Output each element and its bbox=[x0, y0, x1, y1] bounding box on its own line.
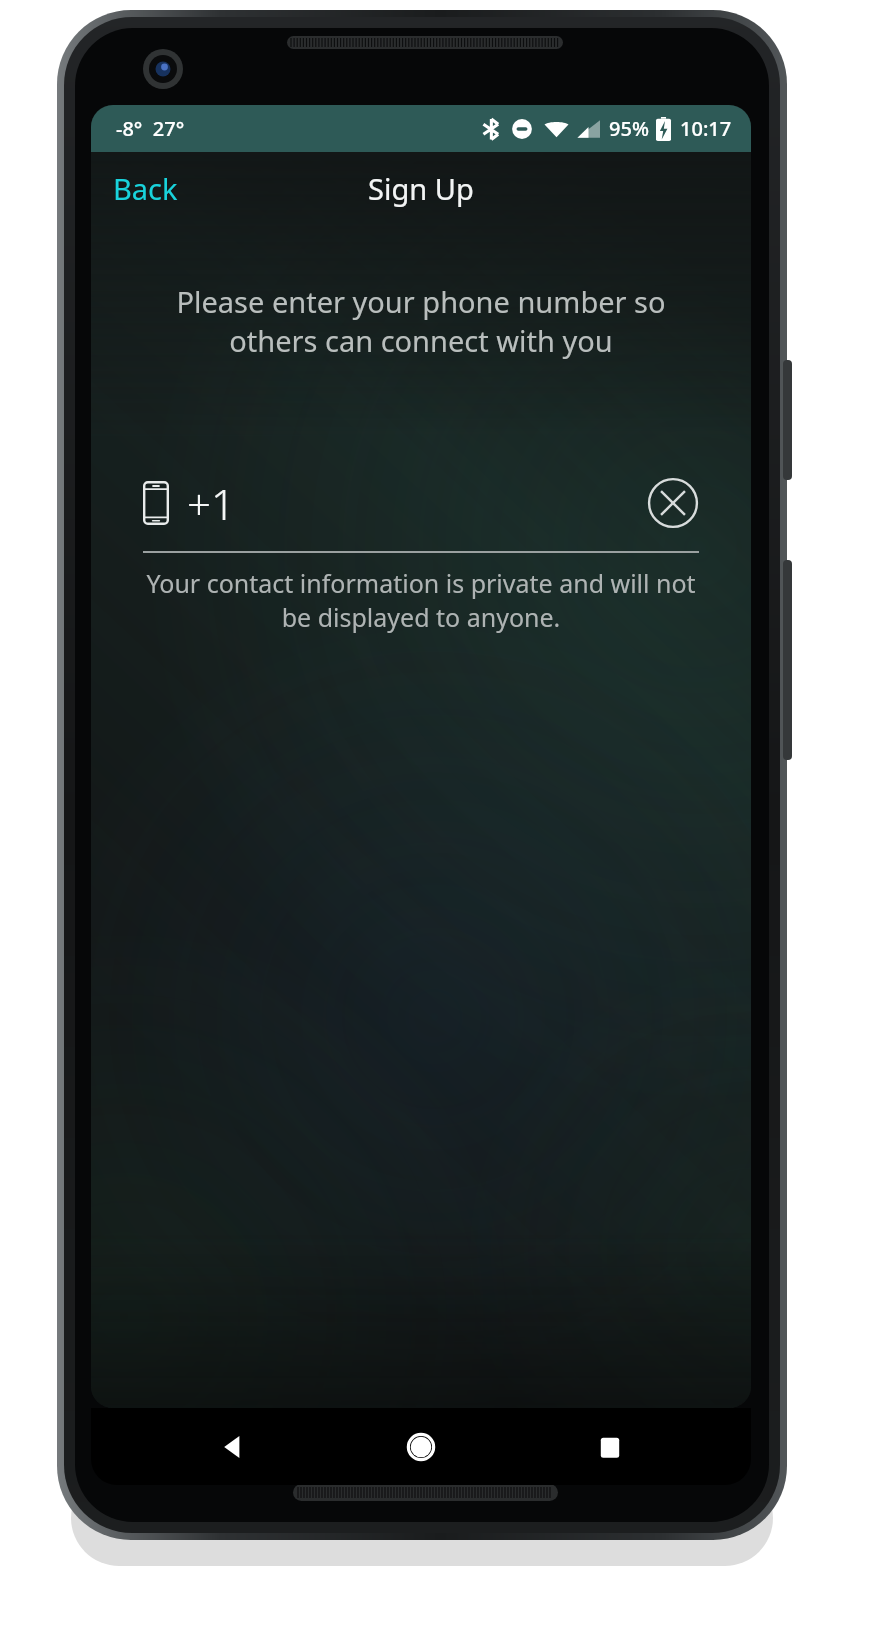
button[interactable]: Back bbox=[209, 1424, 255, 1470]
staticText: +1 bbox=[187, 475, 235, 532]
button[interactable]: Recents bbox=[587, 1424, 633, 1470]
staticText: Please enter your phone number so others… bbox=[131, 282, 711, 360]
staticText: Your contact information is private and … bbox=[135, 566, 707, 634]
staticText: 10:17 bbox=[680, 115, 732, 142]
staticText: Sign Up bbox=[368, 169, 474, 208]
other: Phone bbox=[143, 481, 169, 525]
button[interactable]: Back bbox=[91, 159, 200, 218]
staticText: 95% bbox=[609, 115, 649, 142]
button[interactable]: Clear bbox=[647, 477, 699, 529]
button[interactable]: Home bbox=[398, 1424, 444, 1470]
staticText: -8° 27° bbox=[116, 115, 185, 142]
staticText: Back bbox=[113, 169, 178, 208]
